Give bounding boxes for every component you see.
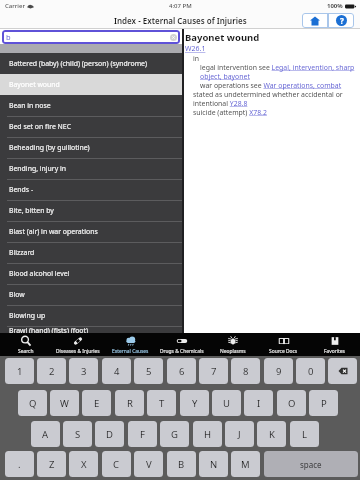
button[interactable]: Blowing up <box>0 305 182 326</box>
staticText: Drugs & Chemicals <box>160 348 204 355</box>
button[interactable]: C <box>102 451 131 477</box>
staticText: 2 <box>49 365 55 378</box>
button[interactable]: 1 <box>5 358 34 384</box>
button[interactable]: M <box>231 451 260 477</box>
button[interactable]: T <box>147 390 176 416</box>
button[interactable]: J <box>225 421 254 447</box>
staticText: Beheading (by guillotine) <box>9 143 90 152</box>
button[interactable]: space <box>264 451 358 477</box>
button[interactable]: war operations see War operations, comba… <box>200 81 342 90</box>
button[interactable]: Y <box>180 390 209 416</box>
button[interactable]: G <box>160 421 189 447</box>
button[interactable]: A <box>31 421 60 447</box>
button[interactable]: Blow <box>0 284 182 305</box>
staticText: 4 <box>114 365 120 378</box>
staticText: B <box>178 458 185 471</box>
button[interactable]: 8 <box>231 358 260 384</box>
staticText: External Causes <box>112 348 149 355</box>
button[interactable]: H <box>193 421 222 447</box>
button[interactable]: intentional Y28.8 <box>193 99 248 108</box>
button[interactable]: E <box>82 390 111 416</box>
button[interactable]: object, bayonet <box>200 72 250 81</box>
staticText: N <box>210 458 218 471</box>
button[interactable]: K <box>257 421 286 447</box>
staticText: 9 <box>276 365 282 378</box>
button[interactable]: D <box>95 421 124 447</box>
button[interactable]: Beheading (by guillotine) <box>0 137 182 158</box>
button[interactable]: R <box>115 390 144 416</box>
button[interactable]: V <box>134 451 163 477</box>
staticText: Blizzard <box>9 248 35 257</box>
button[interactable]: N <box>199 451 228 477</box>
button[interactable]: suicide (attempt) X78.2 <box>193 108 267 117</box>
button[interactable]: Help <box>328 13 354 28</box>
button[interactable]: Q <box>18 390 47 416</box>
button[interactable]: 3 <box>69 358 98 384</box>
button[interactable]: O <box>277 390 306 416</box>
button[interactable]: Home <box>302 13 328 28</box>
staticText: Carrier <box>5 2 25 10</box>
button[interactable]: X <box>69 451 98 477</box>
button[interactable]: I <box>244 390 273 416</box>
staticText: X <box>81 458 87 471</box>
staticText: W <box>60 397 69 410</box>
staticText: F <box>140 428 145 441</box>
staticText: 3 <box>81 365 87 378</box>
button[interactable]: legal intervention see Legal, interventi… <box>200 63 355 72</box>
button[interactable]: . <box>5 451 34 477</box>
button[interactable]: 4 <box>102 358 131 384</box>
button[interactable]: Battered (baby) (child) (person) (syndro… <box>0 53 182 74</box>
button[interactable]: 9 <box>264 358 293 384</box>
button[interactable]: 7 <box>199 358 228 384</box>
button[interactable]: B <box>167 451 196 477</box>
staticText: Bed set on fire NEC <box>9 122 72 131</box>
button[interactable]: Bean in nose <box>0 95 182 116</box>
button[interactable]: Source Docs <box>258 333 309 356</box>
staticText: K <box>269 428 275 441</box>
button[interactable]: P <box>309 390 338 416</box>
button[interactable]: Favorites <box>309 333 360 356</box>
button[interactable]: 2 <box>37 358 66 384</box>
staticText: 8 <box>243 365 249 378</box>
button[interactable]: stated as undetermined whether accidenta… <box>193 90 343 99</box>
button[interactable]: Blizzard <box>0 242 182 263</box>
button[interactable]: 5 <box>134 358 163 384</box>
button[interactable]: Z <box>37 451 66 477</box>
button[interactable]: Search <box>0 333 52 356</box>
button[interactable]: 6 <box>167 358 196 384</box>
staticText: Z <box>49 458 55 471</box>
button[interactable]: S <box>63 421 92 447</box>
staticText: Index - External Causes of Injuries <box>114 15 247 26</box>
button[interactable]: Diseases & Injuries <box>52 333 104 356</box>
button[interactable]: L <box>290 421 319 447</box>
button[interactable]: Bite, bitten by <box>0 200 182 221</box>
staticText: Blast (air) in war operations <box>9 227 98 236</box>
button[interactable]: Drugs & Chemicals <box>156 333 207 356</box>
button[interactable]: W <box>50 390 79 416</box>
staticText: U <box>223 397 230 410</box>
button[interactable]: Bed set on fire NEC <box>0 116 182 137</box>
button[interactable]: F <box>128 421 157 447</box>
button[interactable]: Brawl (hand) (fists) (foot) <box>0 326 182 333</box>
staticText: Brawl (hand) (fists) (foot) <box>9 326 89 333</box>
button[interactable]: Bayonet wound <box>0 74 182 95</box>
button[interactable]: b <box>2 30 180 44</box>
button[interactable]: External Causes <box>104 333 156 356</box>
button[interactable]: Blast (air) in war operations <box>0 221 182 242</box>
staticText: Blow <box>9 290 25 299</box>
staticText: A <box>42 428 49 441</box>
button[interactable]: Bending, injury in <box>0 158 182 179</box>
staticText: ? <box>340 15 344 26</box>
button[interactable]: W26.1 <box>185 44 206 54</box>
button[interactable]: Bends - <box>0 179 182 200</box>
button[interactable]: U <box>212 390 241 416</box>
staticText: Bending, injury in <box>9 164 67 173</box>
staticText: space <box>300 459 322 470</box>
button[interactable] <box>328 358 357 384</box>
button[interactable]: Blood alcohol level <box>0 263 182 284</box>
staticText: G <box>171 428 178 441</box>
staticText: Q <box>29 397 37 410</box>
button[interactable]: Neoplasms <box>207 333 258 356</box>
staticText: Diseases & Injuries <box>56 348 100 355</box>
button[interactable]: 0 <box>296 358 325 384</box>
